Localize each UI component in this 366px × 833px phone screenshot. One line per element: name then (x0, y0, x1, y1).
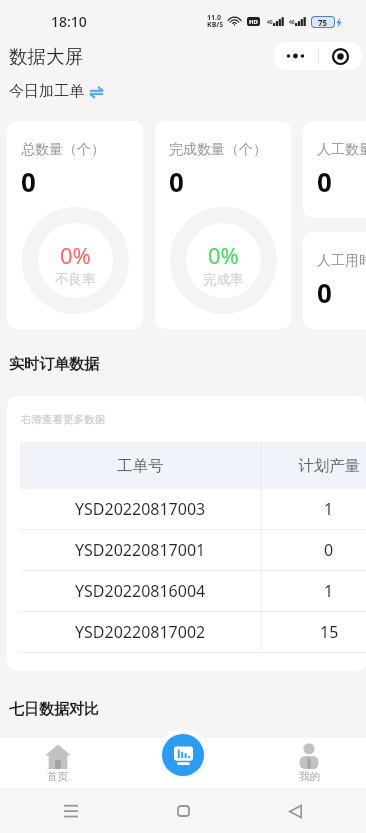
button[interactable]: Recents (53, 793, 89, 829)
staticText: 不良率 (55, 271, 96, 288)
button[interactable]: 人工数量（个） (303, 121, 366, 218)
button[interactable]: 首页 (0, 738, 115, 788)
staticText: 右滑查看更多数据 (21, 413, 105, 426)
staticText: YSD20220817002 (75, 621, 206, 643)
button[interactable]: Home (165, 793, 201, 829)
staticText: 15 (320, 621, 339, 643)
staticText: 0% (60, 240, 91, 270)
staticText: 11.0 KB/S (207, 13, 224, 30)
staticText: 40 (289, 19, 295, 26)
staticText: 0 (317, 275, 332, 310)
button[interactable]: Close (319, 42, 362, 70)
staticText: 计划产量 (298, 456, 360, 476)
staticText: 完成率 (203, 271, 244, 288)
staticText: 工单号 (117, 456, 164, 476)
button[interactable]: 人工用时（分） (303, 232, 366, 329)
button[interactable]: 我的 (252, 738, 366, 788)
staticText: 首页 (47, 770, 68, 783)
staticText: 18:10 (51, 12, 87, 31)
staticText: YSD20220816004 (75, 580, 206, 602)
button[interactable]: Menu (273, 42, 318, 70)
staticText: 完成数量（个） (169, 141, 267, 159)
staticText: 实时订单数据 (9, 355, 99, 374)
staticText: HD (249, 18, 258, 26)
staticText: 数据大屏 (9, 45, 83, 68)
staticText: 七日数据对比 (9, 700, 99, 719)
staticText: 1 (324, 498, 334, 520)
staticText: 我的 (299, 770, 320, 783)
staticText: 今日加工单 (9, 82, 84, 101)
staticText: 0 (169, 164, 184, 199)
button[interactable]: 今日加工单 (9, 82, 104, 101)
staticText: 75 (318, 17, 328, 27)
staticText: 0 (317, 164, 332, 199)
staticText: 人工用时（分） (317, 252, 366, 270)
other: Switch (89, 86, 104, 98)
staticText: 1 (324, 580, 334, 602)
button[interactable]: 总数量（个） (7, 121, 143, 329)
staticText: 人工数量（个） (317, 141, 366, 159)
button[interactable]: Back (277, 793, 313, 829)
staticText: 40 (267, 19, 273, 26)
button[interactable]: 完成数量（个） (155, 121, 291, 329)
staticText: 0% (208, 240, 239, 270)
staticText: 总数量（个） (21, 141, 105, 159)
staticText: YSD20220817003 (75, 498, 206, 520)
staticText: 0 (324, 539, 334, 561)
staticText: 0 (21, 164, 36, 199)
button[interactable]: Dashboard (162, 734, 204, 776)
staticText: YSD20220817001 (75, 539, 206, 561)
